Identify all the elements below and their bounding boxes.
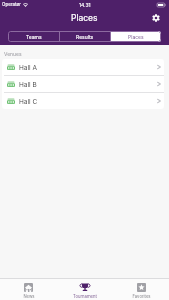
button[interactable]: News: [0, 279, 57, 300]
staticText: Teams: [26, 34, 42, 40]
staticText: Hall C: [19, 98, 38, 106]
button[interactable]: Teams: [8, 31, 59, 42]
staticText: Places: [71, 13, 98, 23]
staticText: Places: [128, 34, 144, 40]
staticText: News: [23, 294, 35, 299]
button[interactable]: Hall C: [2, 93, 164, 109]
button[interactable]: Favorites: [113, 279, 169, 300]
button[interactable]: Results: [60, 31, 110, 42]
staticText: Venues: [4, 51, 22, 57]
staticText: Hall B: [19, 81, 37, 89]
button[interactable]: Hall B: [2, 76, 164, 92]
staticText: Operatør: [2, 2, 21, 7]
staticText: Favorites: [132, 294, 151, 299]
button[interactable]: Tournament: [57, 279, 113, 300]
staticText: Hall A: [19, 64, 37, 72]
button[interactable]: Places: [111, 31, 161, 42]
button[interactable]: Hall A: [2, 59, 164, 75]
staticText: Tournament: [73, 294, 97, 299]
button[interactable]: Settings: [150, 12, 161, 23]
staticText: 14.31: [79, 2, 91, 8]
staticText: Results: [76, 34, 94, 40]
